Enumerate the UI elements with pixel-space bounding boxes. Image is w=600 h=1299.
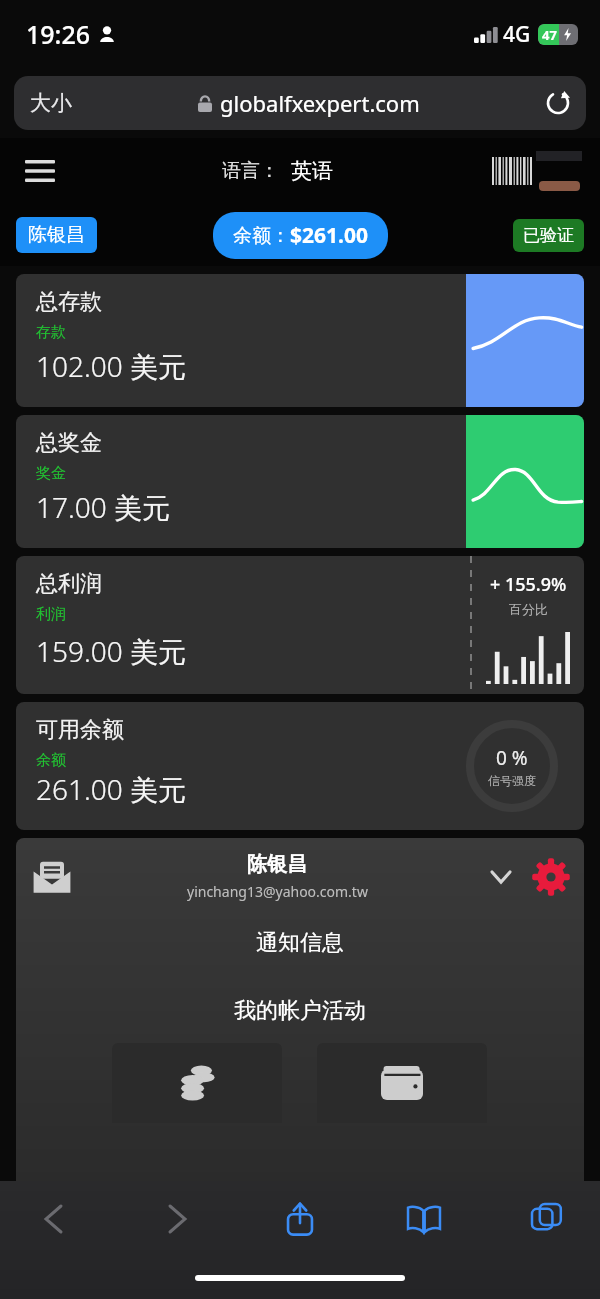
staticText: 百分比	[509, 601, 548, 617]
staticText: $261.00	[290, 221, 368, 250]
staticText: 总奖金	[36, 429, 102, 457]
staticText: 陈银昌	[247, 852, 307, 877]
button[interactable]: Tabs	[524, 1196, 570, 1242]
staticText: 可用余额	[36, 716, 124, 744]
staticText: 余额	[36, 751, 66, 770]
button[interactable]: Settings	[528, 854, 574, 900]
staticText: + 155.9%	[490, 572, 567, 597]
staticText: 余额：	[233, 224, 290, 248]
staticText: 信号强度	[488, 773, 536, 788]
staticText: 英语	[291, 158, 333, 184]
staticText: globalfxexpert.com	[220, 88, 420, 118]
staticText: 4G	[503, 20, 531, 49]
other: Deposits	[175, 1063, 219, 1103]
button[interactable]: 总存款	[16, 274, 584, 407]
other: Reload	[546, 91, 570, 115]
button[interactable]: Menu	[18, 149, 62, 193]
staticText: 存款	[36, 323, 66, 342]
staticText: 利润	[36, 605, 66, 624]
staticText: 总利润	[36, 570, 102, 598]
button[interactable]: Expand	[482, 858, 520, 896]
staticText: 大小	[30, 90, 72, 116]
staticText: 通知信息	[16, 929, 584, 957]
other: Wallet	[381, 1066, 423, 1100]
button[interactable]: Deposits	[112, 1043, 282, 1123]
staticText: 语言：	[222, 159, 279, 183]
button[interactable]: 陈银昌	[16, 217, 97, 253]
staticText: 0 %	[496, 745, 528, 771]
staticText: 159.00 美元	[36, 632, 187, 670]
button[interactable]: Wallet	[317, 1043, 487, 1123]
staticText: 陈银昌	[28, 223, 85, 247]
button[interactable]: WhatsApp	[40, 1208, 98, 1266]
staticText: 奖金	[36, 464, 66, 483]
button[interactable]: Chat	[514, 1207, 576, 1269]
button[interactable]: Share	[277, 1196, 323, 1242]
staticText: 17.00 美元	[36, 488, 171, 526]
button[interactable]: 总利润	[16, 556, 584, 694]
button[interactable]: Forward	[154, 1196, 200, 1242]
staticText: 261.00 美元	[36, 770, 187, 808]
staticText: 47	[542, 26, 557, 44]
button[interactable]: Back	[30, 1196, 76, 1242]
staticText: 我的帐户活动	[16, 997, 584, 1025]
staticText: 已验证	[523, 225, 574, 246]
button[interactable]: 可用余额	[16, 702, 584, 830]
button[interactable]: 大小	[14, 76, 586, 130]
staticText: 总存款	[36, 288, 102, 316]
staticText: yinchang13@yahoo.com.tw	[187, 882, 368, 901]
button[interactable]: Bookmarks	[401, 1196, 447, 1242]
staticText: 102.00 美元	[36, 347, 187, 385]
other: Mail	[32, 860, 72, 894]
button[interactable]: 总奖金	[16, 415, 584, 548]
button[interactable]: 余额：	[213, 212, 388, 259]
staticText: 19:26	[26, 17, 91, 51]
button[interactable]: 已验证	[513, 219, 584, 252]
